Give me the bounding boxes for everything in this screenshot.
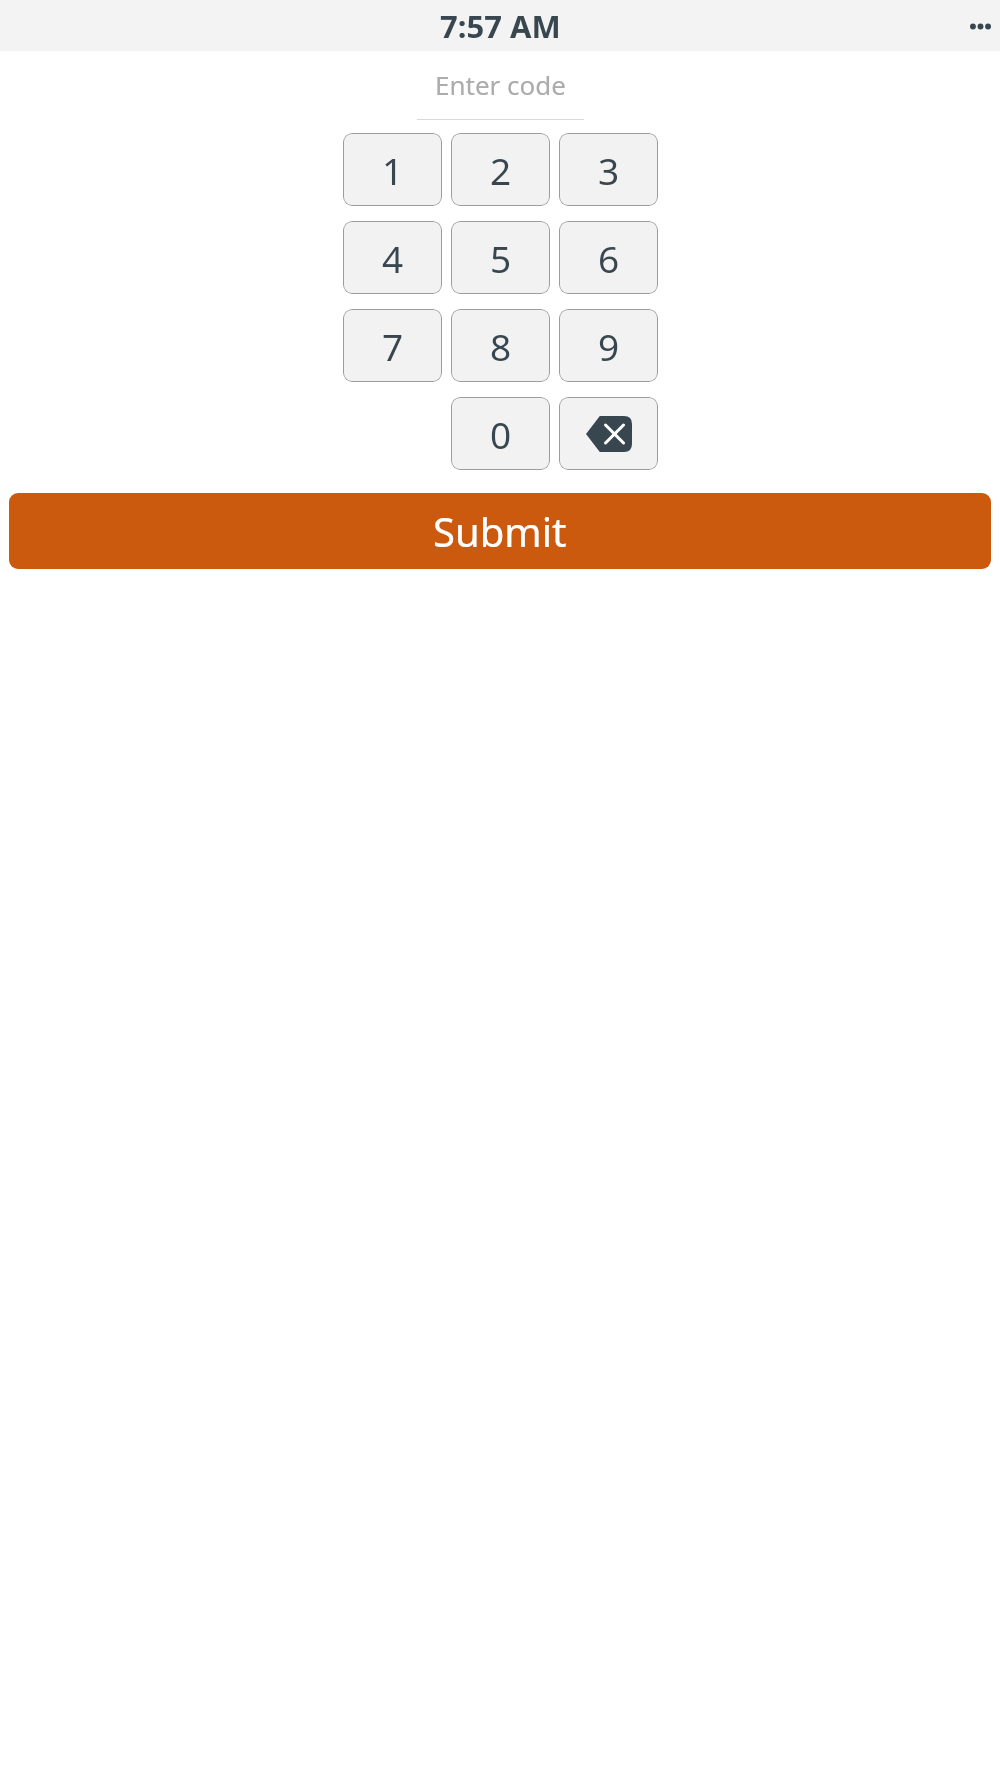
button[interactable]: 3 [559, 133, 658, 206]
staticText: 6 [598, 233, 620, 283]
staticText: 7 [382, 321, 404, 371]
button[interactable]: 5 [451, 221, 550, 294]
button[interactable]: 4 [343, 221, 442, 294]
staticText: 0 [490, 409, 512, 459]
button[interactable]: More options [965, 11, 995, 41]
staticText: 7:57 AM [440, 5, 561, 47]
button[interactable]: 0 [451, 397, 550, 470]
button[interactable]: 7 [343, 309, 442, 382]
staticText: 4 [382, 233, 404, 283]
button[interactable]: Backspace [559, 397, 658, 470]
staticText: 8 [490, 321, 512, 371]
button[interactable]: 2 [451, 133, 550, 206]
staticText: 9 [598, 321, 620, 371]
staticText: 1 [382, 145, 404, 195]
staticText: 3 [598, 145, 620, 195]
staticText: 2 [490, 145, 512, 195]
button[interactable]: 8 [451, 309, 550, 382]
button[interactable]: 1 [343, 133, 442, 206]
button[interactable]: 9 [559, 309, 658, 382]
staticText: Enter code [435, 67, 566, 102]
staticText: 5 [490, 233, 512, 283]
staticText: Submit [433, 504, 567, 558]
button[interactable]: 6 [559, 221, 658, 294]
button[interactable]: Submit [9, 493, 991, 569]
